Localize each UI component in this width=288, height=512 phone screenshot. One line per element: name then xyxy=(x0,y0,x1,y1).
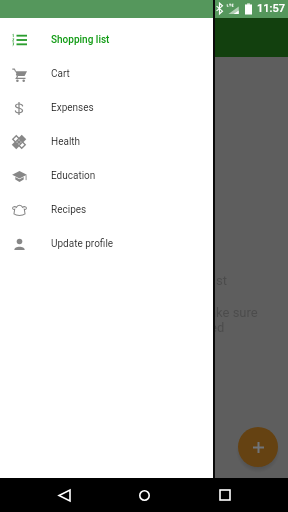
button[interactable]: Education xyxy=(0,159,213,193)
button[interactable]: Update profile xyxy=(0,227,213,261)
button[interactable]: Recent apps xyxy=(208,478,242,512)
staticText: Nothing in your shopping list xyxy=(62,273,227,288)
staticText: Education xyxy=(51,170,96,182)
button[interactable]: Recipes xyxy=(0,193,213,227)
button[interactable]: Health xyxy=(0,125,213,159)
staticText: Expenses xyxy=(51,102,94,114)
staticText: Health xyxy=(51,136,81,148)
staticText: Cart xyxy=(51,68,70,80)
staticText: Update profile xyxy=(51,238,114,250)
button[interactable]: Expenses xyxy=(0,91,213,125)
staticText: Recipes xyxy=(51,204,87,216)
button[interactable]: Shopping list xyxy=(0,23,213,57)
button[interactable]: Back xyxy=(47,478,81,512)
staticText: 11:57 xyxy=(257,2,285,15)
button[interactable]: Add item xyxy=(238,427,278,467)
staticText: Shopping list xyxy=(51,34,110,46)
button[interactable]: Home xyxy=(127,478,161,512)
button[interactable]: Cart xyxy=(0,57,213,91)
staticText: You have no items in the list, make sure… xyxy=(30,305,258,335)
